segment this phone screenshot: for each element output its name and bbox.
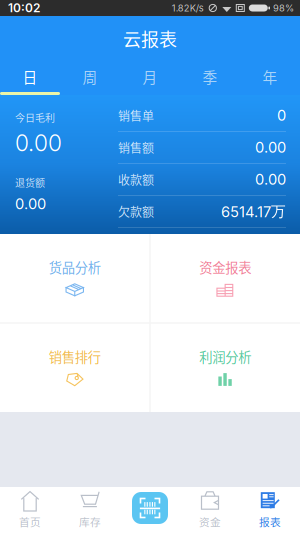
button[interactable]: 日 — [0, 61, 60, 92]
button[interactable]: 报表 — [240, 487, 300, 533]
staticText: 98% — [273, 2, 294, 14]
staticText: 1.82K/s — [172, 2, 204, 14]
button[interactable]: 资金报表 — [150, 234, 300, 322]
staticText: 周 — [82, 66, 97, 87]
staticText: 资金 — [199, 514, 221, 529]
button[interactable]: 周 — [60, 61, 120, 92]
staticText: 今日毛利 — [15, 110, 55, 125]
staticText: 10:02 — [8, 1, 40, 15]
button[interactable]: 季 — [180, 61, 240, 92]
button[interactable]: 库存 — [60, 487, 120, 533]
staticText: 销售额 — [118, 139, 154, 156]
button[interactable]: 首页 — [0, 487, 60, 533]
button[interactable]: 年 — [240, 61, 300, 92]
staticText: 销售排行 — [49, 347, 101, 366]
staticText: 报表 — [259, 514, 281, 529]
staticText: 利润分析 — [199, 347, 251, 366]
staticText: 0.00 — [255, 171, 286, 188]
button[interactable]: 利润分析 — [150, 323, 300, 412]
staticText: 月 — [142, 66, 157, 87]
staticText: 资金报表 — [199, 257, 251, 277]
button[interactable]: 销售排行 — [0, 323, 149, 412]
staticText: 0.00 — [255, 139, 286, 156]
staticText: 欠款额 — [118, 203, 154, 220]
staticText: 收款额 — [118, 171, 154, 188]
button[interactable]: 货品分析 — [0, 234, 149, 322]
staticText: 退货额 — [15, 175, 45, 190]
button[interactable]: Scan — [120, 487, 180, 533]
staticText: 货品分析 — [49, 257, 101, 277]
staticText: 0.00 — [15, 195, 46, 213]
staticText: 日 — [22, 66, 37, 87]
staticText: 0 — [277, 107, 286, 124]
button[interactable]: 资金 — [180, 487, 240, 533]
staticText: 库存 — [79, 514, 101, 529]
staticText: 0.00 — [15, 129, 62, 157]
staticText: 年 — [262, 66, 277, 87]
staticText: 云报表 — [123, 25, 177, 52]
staticText: 季 — [202, 66, 217, 87]
staticText: 6514.17万 — [221, 202, 286, 221]
button[interactable]: 月 — [120, 61, 180, 92]
staticText: 首页 — [19, 514, 41, 529]
staticText: 销售单 — [118, 107, 154, 124]
